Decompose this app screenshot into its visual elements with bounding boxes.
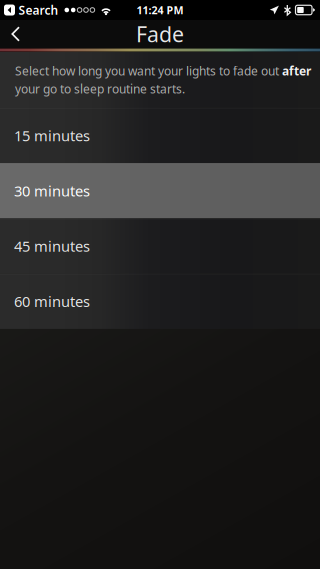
staticText: 30 minutes xyxy=(14,181,90,200)
staticText: after xyxy=(282,63,311,79)
staticText: 45 minutes xyxy=(14,236,90,256)
staticText: your go to sleep routine starts. xyxy=(15,81,185,97)
staticText: 60 minutes xyxy=(14,291,90,311)
staticText: 15 minutes xyxy=(14,126,90,145)
button[interactable]: 45 minutes xyxy=(0,218,320,274)
button[interactable]: 30 minutes xyxy=(0,163,320,218)
staticText: Fade xyxy=(136,20,184,48)
button[interactable]: Back to Search xyxy=(4,2,58,18)
staticText: Select how long you want your lights to … xyxy=(15,63,282,79)
staticText: 11:24 PM xyxy=(136,3,183,17)
staticText: Search xyxy=(18,2,58,18)
button[interactable]: Back xyxy=(3,20,28,48)
button[interactable]: 60 minutes xyxy=(0,274,320,329)
button[interactable]: 15 minutes xyxy=(0,108,320,163)
